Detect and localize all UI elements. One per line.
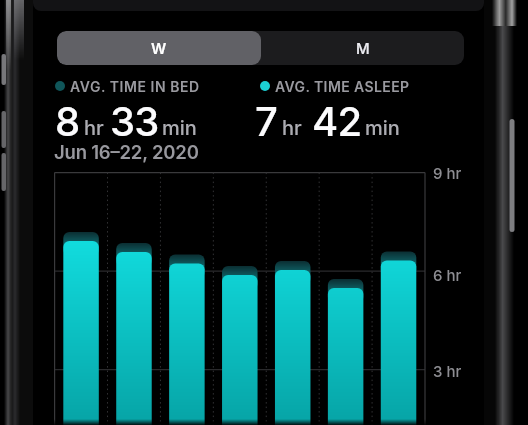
staticText: AVG. TIME ASLEEP bbox=[275, 78, 410, 95]
button[interactable]: W bbox=[57, 31, 261, 65]
staticText: 9 hr bbox=[433, 164, 462, 182]
staticText: min bbox=[162, 116, 197, 140]
staticText: Jun 16–22, 2020 bbox=[54, 141, 199, 163]
staticText: hr bbox=[282, 116, 302, 140]
staticText: 7 bbox=[255, 97, 278, 139]
button[interactable]: M bbox=[261, 31, 464, 65]
staticText: W bbox=[151, 39, 167, 57]
staticText: 42 bbox=[312, 97, 362, 139]
staticText: 3 hr bbox=[433, 362, 462, 380]
staticText: 8 bbox=[55, 97, 80, 139]
staticText: AVG. TIME IN BED bbox=[70, 78, 200, 95]
staticText: hr bbox=[84, 116, 104, 140]
staticText: 6 hr bbox=[433, 266, 462, 284]
staticText: M bbox=[356, 39, 370, 57]
staticText: 33 bbox=[110, 97, 159, 139]
staticText: min bbox=[365, 116, 400, 140]
